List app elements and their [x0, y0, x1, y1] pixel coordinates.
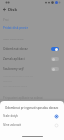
button[interactable]: Soukromy sejf: [0, 64, 64, 73]
button[interactable]: Pridat disk prostr: [3, 26, 29, 30]
button[interactable]: Odomknut obraz: [0, 44, 64, 53]
staticText: Stale dotyk: [3, 114, 18, 118]
staticText: Pro i: [3, 18, 10, 22]
staticText: Silne zobrazit: [3, 123, 22, 127]
staticText: Odomknut obraz: [3, 47, 28, 51]
staticText: Zamak aplikaci: [3, 57, 25, 61]
button[interactable]: Back: [1, 6, 8, 13]
staticText: Odomknut pri vypnuti sposobu obrazo: [5, 106, 59, 110]
staticText: Disk: [8, 7, 18, 13]
staticText: nastr zmaz nezob: [3, 37, 24, 40]
button[interactable]: Zamak aplikaci: [0, 54, 64, 63]
staticText: Soukromy sejf: [3, 67, 24, 71]
staticText: Pridat disk prostr: [3, 26, 29, 30]
button[interactable]: Stale dotyk: [0, 112, 64, 120]
staticText: Pri spusteni aplikacie sa zobrazi: [3, 96, 43, 100]
button[interactable]: Silne zobrazit: [0, 121, 64, 129]
